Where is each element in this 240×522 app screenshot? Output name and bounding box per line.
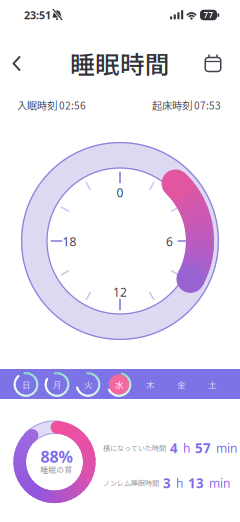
staticText: 0 — [116, 184, 123, 200]
button[interactable]: 土 — [199, 371, 225, 397]
button[interactable]: 火 — [75, 371, 101, 397]
staticText: 木 — [146, 378, 154, 391]
staticText: h — [176, 475, 183, 491]
staticText: 18 — [62, 233, 76, 249]
staticText: 金 — [177, 378, 185, 391]
staticText: 23:51 — [24, 8, 51, 22]
staticText: 3 — [163, 474, 171, 492]
button[interactable]: 日 — [13, 371, 39, 397]
staticText: 13 — [188, 474, 204, 492]
staticText: ノンレム睡眠時間 — [103, 478, 159, 488]
staticText: 日 — [22, 378, 30, 391]
button[interactable]: 木 — [137, 371, 163, 397]
staticText: 土 — [208, 378, 216, 391]
staticText: 横になっていた時間 — [103, 443, 166, 453]
button[interactable]: Back — [0, 41, 38, 85]
button[interactable]: 月 — [44, 371, 70, 397]
button[interactable]: 水 — [106, 371, 132, 397]
staticText: 12 — [113, 284, 127, 300]
button[interactable]: Calendar — [191, 41, 235, 85]
staticText: min — [209, 475, 230, 491]
staticText: 入眠時刻 02:56 — [17, 98, 86, 112]
staticText: 88% — [40, 446, 72, 467]
staticText: 月 — [53, 378, 61, 391]
staticText: 起床時刻 07:53 — [152, 98, 221, 112]
staticText: min — [216, 440, 237, 456]
staticText: 4 — [170, 439, 178, 457]
staticText: 睡眠の質 — [40, 464, 72, 475]
staticText: h — [183, 440, 190, 456]
staticText: 6 — [166, 233, 173, 249]
staticText: 77 — [203, 10, 213, 20]
staticText: 57 — [195, 439, 211, 457]
staticText: 水 — [115, 378, 123, 391]
button[interactable]: 金 — [168, 371, 194, 397]
staticText: 火 — [84, 378, 92, 391]
staticText: 睡眠時間 — [70, 45, 170, 81]
